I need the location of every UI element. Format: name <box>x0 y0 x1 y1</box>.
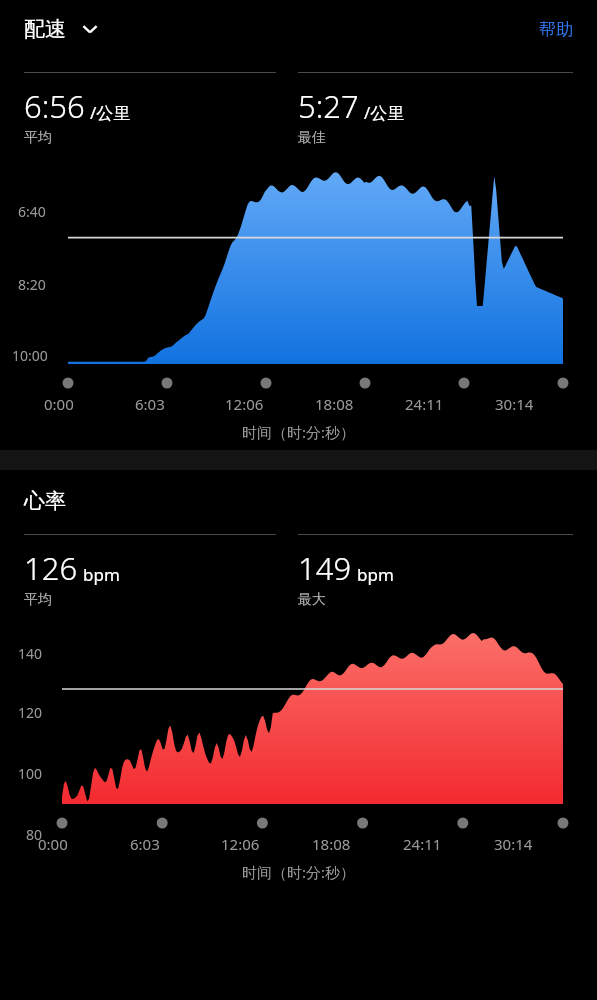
staticText: 24:11 <box>405 394 444 414</box>
staticText: 100 <box>18 764 43 783</box>
staticText: 10:00 <box>12 346 48 365</box>
staticText: 120 <box>18 703 43 722</box>
staticText: 0:00 <box>38 834 68 854</box>
staticText: 5:27 <box>298 85 359 127</box>
button[interactable]: 帮助 <box>539 19 573 40</box>
staticText: 140 <box>18 644 43 663</box>
button[interactable]: 6:56 <box>24 72 276 147</box>
other: 展开 <box>80 19 100 39</box>
staticText: bpm <box>357 563 394 586</box>
button[interactable]: 配速 <box>24 16 100 42</box>
staticText: 18:08 <box>315 394 354 414</box>
staticText: 6:03 <box>130 834 160 854</box>
staticText: 0:00 <box>44 394 74 414</box>
staticText: 6:40 <box>18 202 46 221</box>
staticText: /公里 <box>90 101 131 124</box>
staticText: 80 <box>26 825 43 844</box>
staticText: 平均 <box>24 591 52 609</box>
staticText: 时间（时:分:秒） <box>242 862 356 882</box>
staticText: 平均 <box>24 129 52 147</box>
staticText: 配速 <box>24 16 66 42</box>
staticText: 30:14 <box>495 394 534 414</box>
button[interactable]: 5:27 <box>298 72 573 147</box>
button[interactable]: 149 <box>298 534 573 609</box>
staticText: 126 <box>24 547 78 589</box>
staticText: 6:03 <box>135 394 165 414</box>
staticText: bpm <box>83 563 120 586</box>
staticText: 最佳 <box>298 129 326 147</box>
staticText: 149 <box>298 547 352 589</box>
staticText: 24:11 <box>403 834 442 854</box>
staticText: 帮助 <box>539 19 573 40</box>
staticText: 最大 <box>298 591 326 609</box>
button[interactable]: 心率 <box>24 488 66 514</box>
button[interactable]: 126 <box>24 534 276 609</box>
staticText: 8:20 <box>18 275 46 294</box>
staticText: 6:56 <box>24 85 85 127</box>
staticText: 30:14 <box>494 834 533 854</box>
staticText: 时间（时:分:秒） <box>242 422 356 442</box>
staticText: 心率 <box>24 488 66 514</box>
staticText: 12:06 <box>221 834 260 854</box>
staticText: 18:08 <box>312 834 351 854</box>
staticText: /公里 <box>364 101 405 124</box>
staticText: 12:06 <box>225 394 264 414</box>
